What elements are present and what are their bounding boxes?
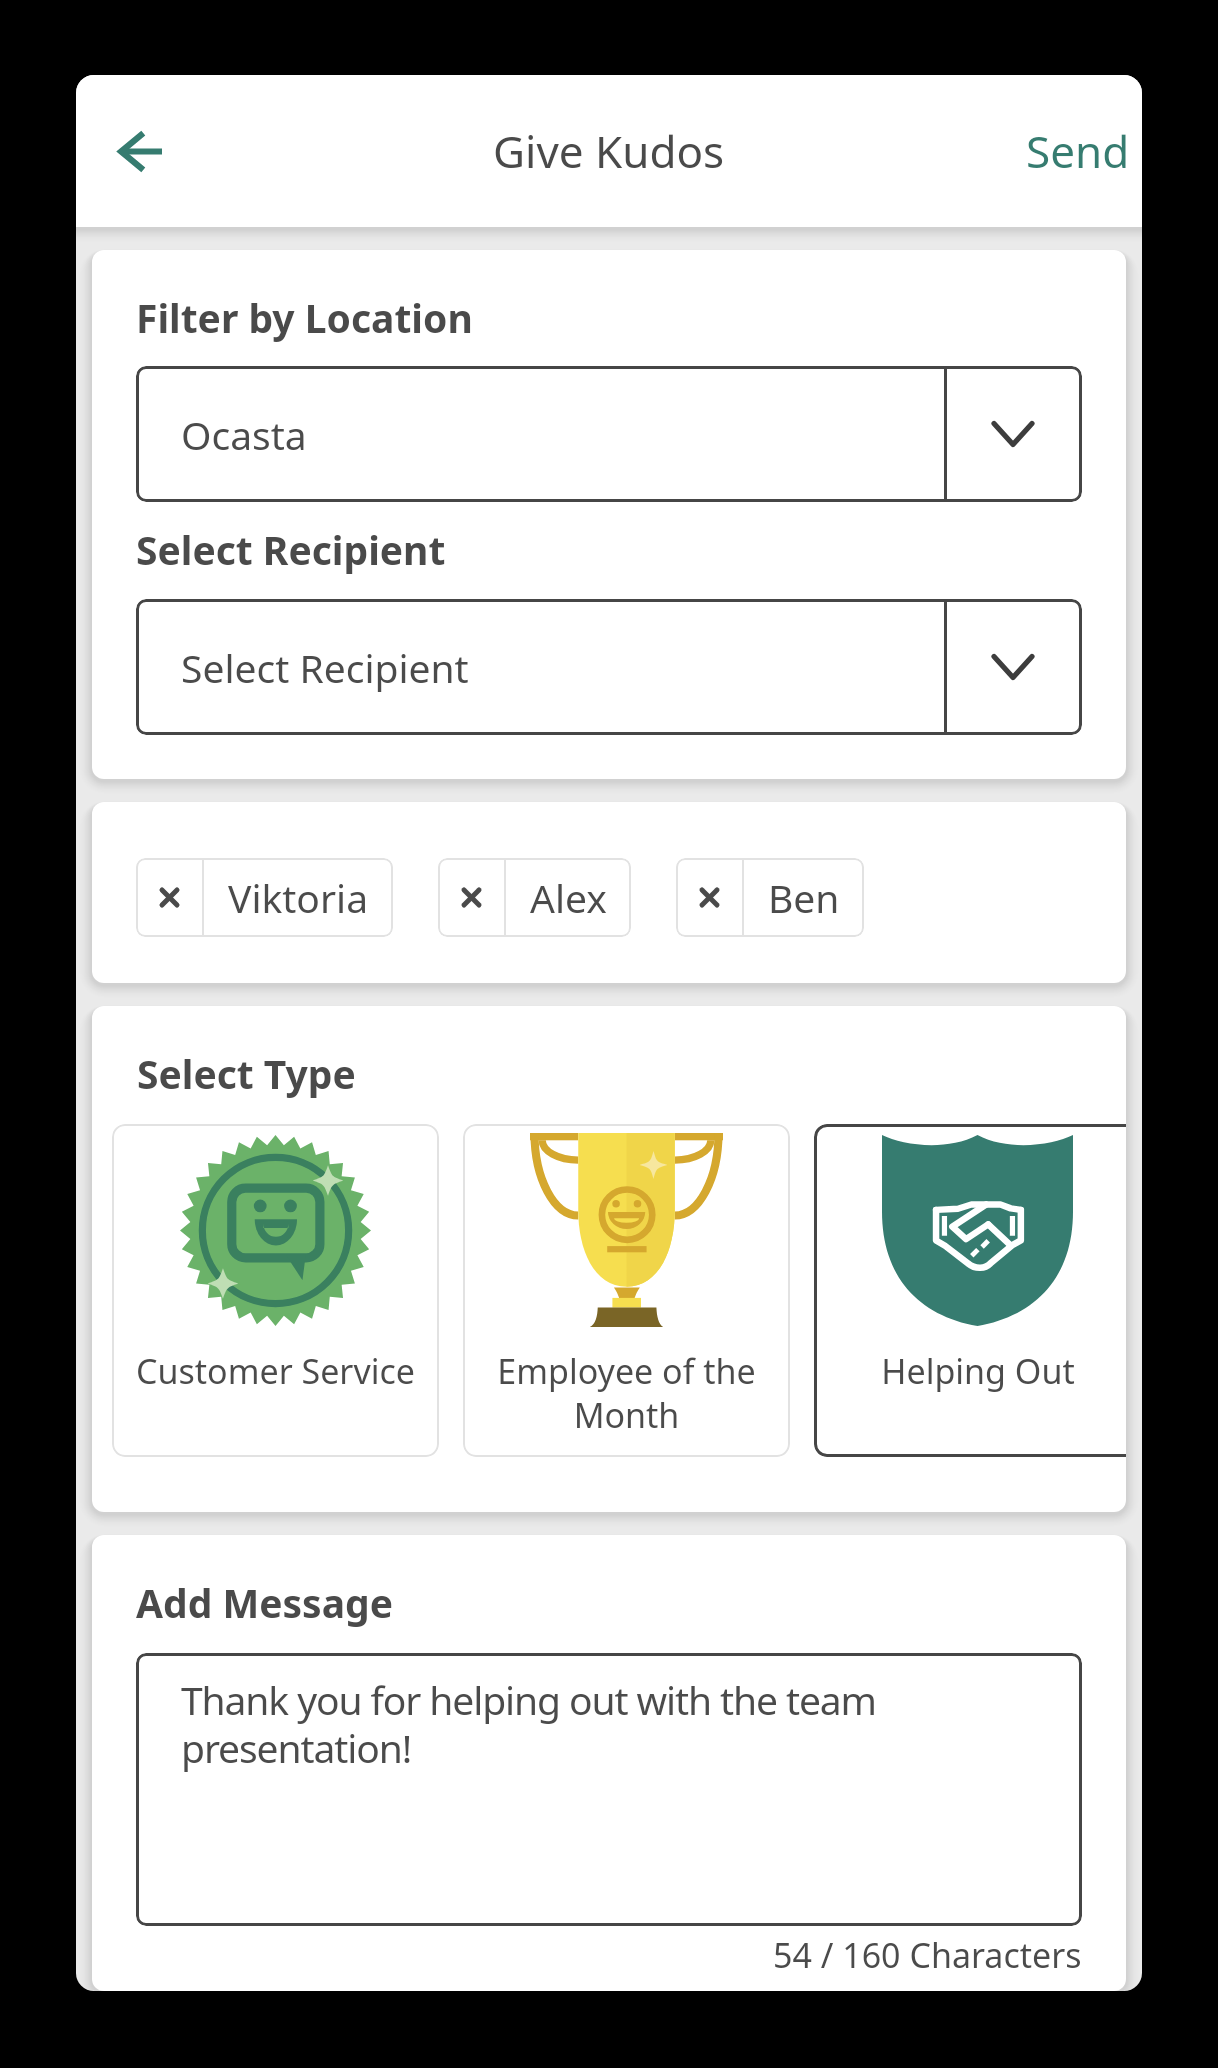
- button[interactable]: Viktoria: [136, 858, 393, 937]
- button[interactable]: Ben: [676, 858, 864, 937]
- staticText: Alex: [530, 871, 607, 924]
- staticText: Select Recipient: [136, 523, 446, 576]
- button[interactable]: Send: [1002, 99, 1142, 203]
- staticText: Select Type: [137, 1047, 356, 1100]
- staticText: Give Kudos: [493, 121, 725, 181]
- staticText: Employee of the Month: [473, 1348, 780, 1438]
- staticText: Helping Out: [881, 1348, 1075, 1394]
- staticText: Viktoria: [228, 871, 369, 924]
- button[interactable]: Alex: [438, 858, 631, 937]
- staticText: Thank you for helping out with the team …: [181, 1673, 1054, 1775]
- staticText: Send: [1026, 121, 1130, 181]
- staticText: Ben: [768, 871, 840, 924]
- button[interactable]: Ocasta: [136, 366, 1082, 502]
- button[interactable]: Select Recipient: [136, 599, 1082, 735]
- button[interactable]: Back: [98, 109, 182, 193]
- staticText: Filter by Location: [136, 291, 473, 344]
- staticText: 54 / 160 Characters: [773, 1932, 1082, 1978]
- staticText: Ocasta: [181, 408, 307, 461]
- button[interactable]: Helping Out: [814, 1124, 1126, 1457]
- button[interactable]: Employee of the Month: [463, 1124, 790, 1457]
- staticText: Customer Service: [136, 1348, 415, 1394]
- staticText: Select Recipient: [181, 641, 469, 694]
- button[interactable]: Customer Service: [112, 1124, 439, 1457]
- staticText: Add Message: [136, 1576, 393, 1629]
- button[interactable]: Thank you for helping out with the team …: [136, 1653, 1082, 1926]
